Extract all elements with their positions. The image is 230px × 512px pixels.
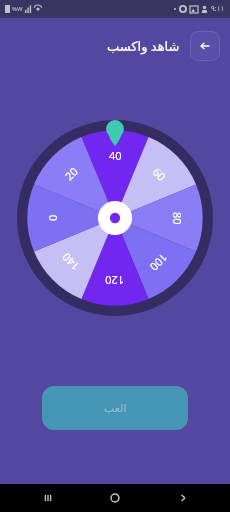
button[interactable]: Home xyxy=(95,484,135,512)
staticText: ٩:١١ xyxy=(211,4,225,14)
staticText: 0 xyxy=(45,214,60,221)
button[interactable]: Back xyxy=(163,484,203,512)
staticText: 40 xyxy=(109,148,122,163)
button[interactable]: Back xyxy=(190,31,220,61)
staticText: 60 xyxy=(150,164,169,184)
button[interactable]: 40 xyxy=(17,120,213,316)
staticText: شاهد واكسب xyxy=(107,37,180,55)
staticText: %W xyxy=(12,5,23,13)
staticText: 120 xyxy=(105,273,124,288)
staticText: 80 xyxy=(170,212,185,225)
button[interactable]: العب xyxy=(42,386,188,430)
staticText: 100 xyxy=(147,250,171,274)
staticText: 140 xyxy=(58,250,82,274)
staticText: 20 xyxy=(61,164,81,183)
button[interactable]: Recent apps xyxy=(28,484,68,512)
staticText: العب xyxy=(104,402,127,415)
